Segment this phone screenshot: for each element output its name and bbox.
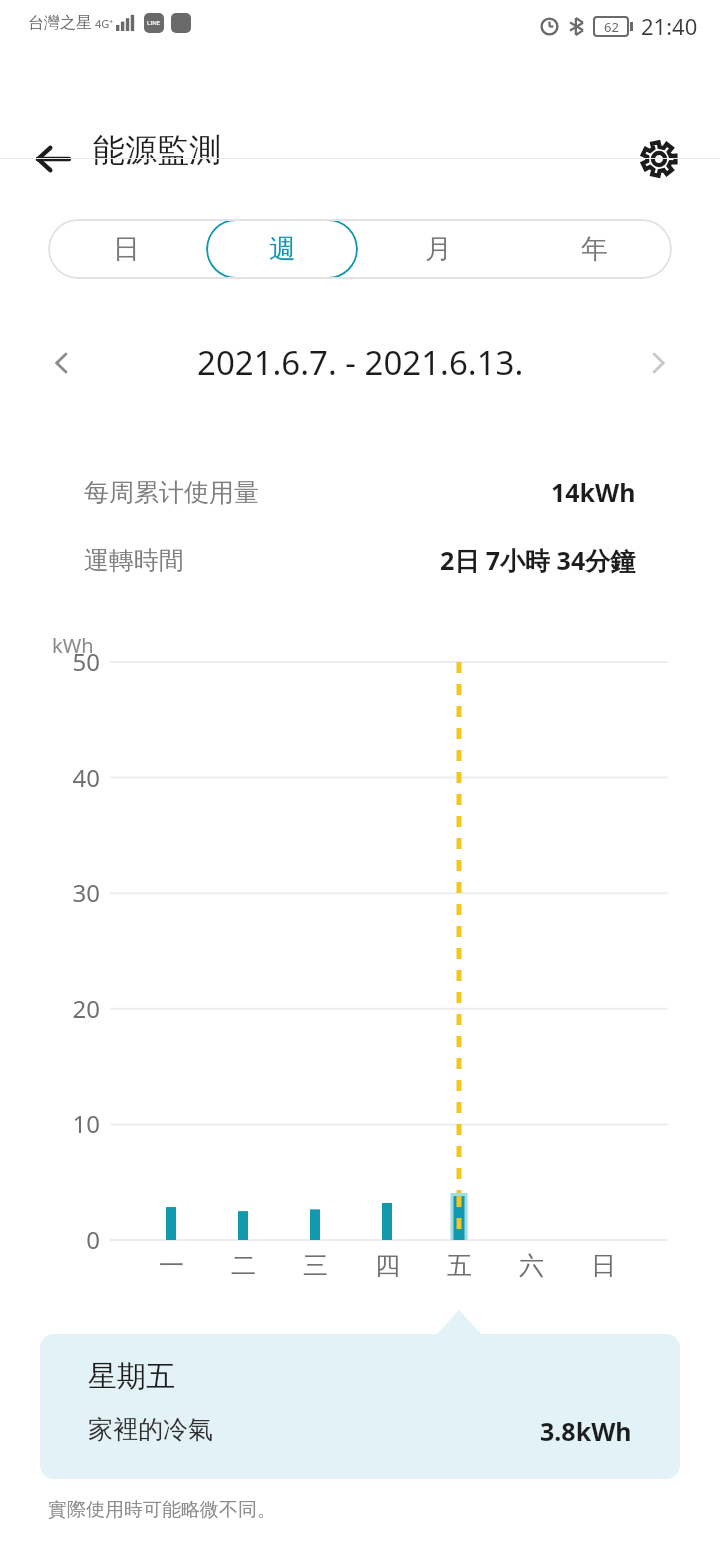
staticText: 家裡的冷氣: [88, 1414, 213, 1445]
staticText: 四: [375, 1250, 400, 1281]
staticText: 運轉時間: [84, 545, 184, 576]
staticText: 62: [604, 18, 619, 36]
staticText: 月: [425, 232, 452, 266]
staticText: 實際使用時可能略微不同。: [48, 1498, 276, 1522]
staticText: 4G⁺: [95, 16, 114, 31]
staticText: 年: [581, 232, 608, 266]
button[interactable]: 六: [507, 1250, 555, 1281]
staticText: 三: [303, 1250, 328, 1281]
staticText: 40: [28, 761, 100, 794]
staticText: 14kWh: [551, 475, 636, 509]
button[interactable]: 五: [435, 1250, 483, 1281]
button[interactable]: 一: [147, 1250, 195, 1281]
staticText: 10: [28, 1107, 100, 1140]
staticText: 日: [113, 232, 140, 266]
staticText: 能源監測: [93, 130, 221, 170]
button[interactable]: 週: [206, 219, 358, 279]
staticText: 六: [519, 1250, 544, 1281]
staticText: 3.8kWh: [540, 1414, 632, 1448]
button[interactable]: 年: [516, 219, 672, 279]
button[interactable]: Back: [22, 128, 84, 190]
staticText: 50: [28, 645, 100, 678]
button[interactable]: 三: [291, 1250, 339, 1281]
button[interactable]: Previous: [34, 335, 90, 391]
staticText: 日: [591, 1250, 616, 1281]
button[interactable]: 月: [360, 219, 516, 279]
staticText: 21:40: [641, 11, 698, 41]
staticText: 週: [269, 232, 296, 266]
staticText: 台灣之星: [28, 13, 92, 33]
button[interactable]: 星期五: [40, 1334, 680, 1479]
staticText: 2日 7小時 34分鐘: [440, 543, 636, 577]
staticText: 每周累计使用量: [84, 477, 259, 508]
button[interactable]: Settings: [628, 128, 690, 190]
button[interactable]: 二: [219, 1250, 267, 1281]
staticText: 30: [28, 876, 100, 909]
staticText: 一: [159, 1250, 184, 1281]
staticText: 二: [231, 1250, 256, 1281]
staticText: kWh: [52, 632, 94, 659]
staticText: 2021.6.7. - 2021.6.13.: [197, 340, 524, 385]
button[interactable]: 日: [579, 1250, 627, 1281]
button[interactable]: 四: [363, 1250, 411, 1281]
staticText: 0: [28, 1223, 100, 1256]
staticText: 五: [447, 1250, 472, 1281]
button[interactable]: Next: [630, 335, 686, 391]
staticText: 星期五: [88, 1358, 175, 1395]
staticText: 20: [28, 992, 100, 1025]
staticText: LINE: [147, 19, 161, 27]
button[interactable]: 日: [48, 219, 204, 279]
